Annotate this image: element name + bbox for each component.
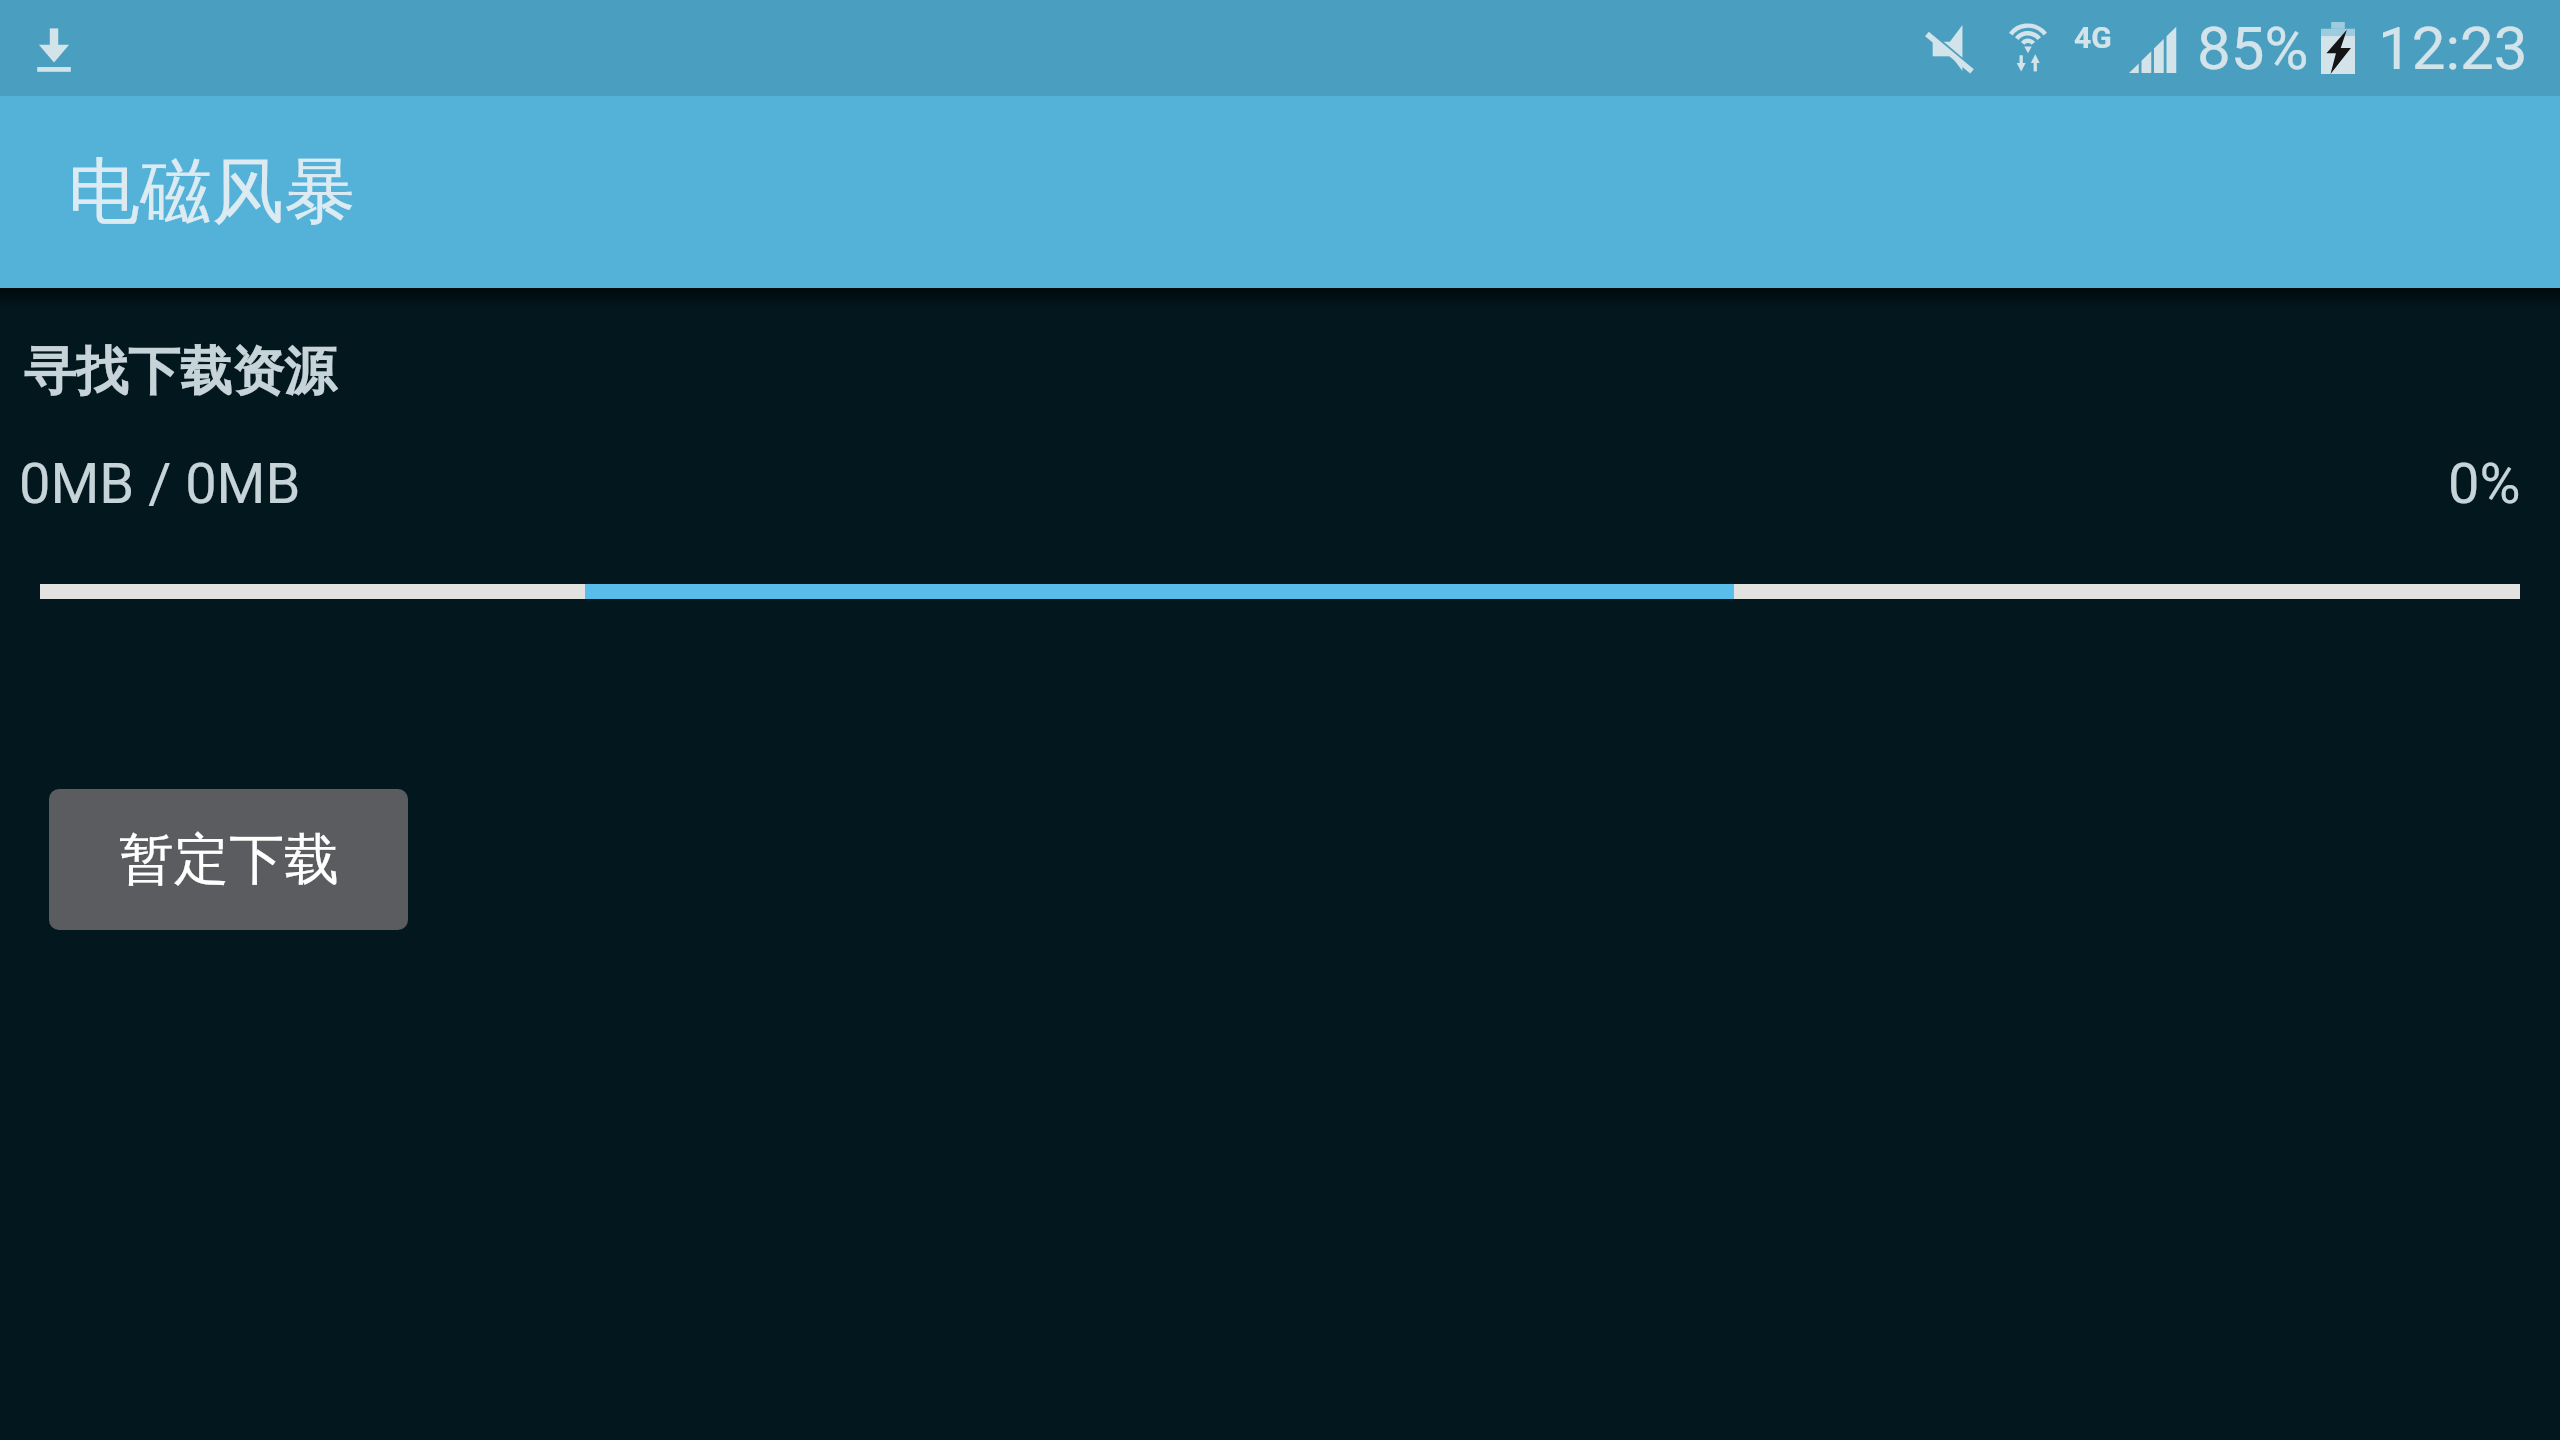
other: Mobile signal full (2129, 23, 2179, 73)
other: Battery 85 percent, charging (2321, 22, 2355, 74)
staticText: 0% (2448, 451, 2521, 517)
other: Wi-Fi connected (2006, 22, 2050, 74)
other: Download in progress (26, 20, 82, 76)
staticText: 4G (2074, 20, 2112, 55)
other: Sound muted (1925, 22, 1973, 74)
staticText: 12:23 (2378, 13, 2528, 83)
staticText: 寻找下载资源 (24, 339, 336, 405)
staticText: 85% (2197, 13, 2309, 83)
staticText: 0MB / 0MB (19, 451, 301, 517)
staticText: 电磁风暴 (68, 147, 356, 238)
staticText: 暂定下载 (119, 825, 339, 894)
button[interactable]: 暂定下载 (49, 789, 408, 930)
